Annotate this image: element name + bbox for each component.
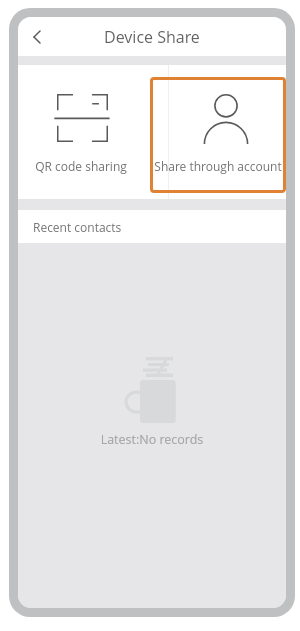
staticText: Latest:No records [18,431,286,448]
button[interactable]: QR code sharing [18,65,150,199]
staticText: Recent contacts [33,219,122,235]
button[interactable]: Share through account [150,77,286,193]
staticText: Share through account [150,158,286,174]
staticText: QR code sharing [18,158,147,174]
button[interactable]: Back [20,20,54,54]
staticText: Device Share [104,26,200,48]
